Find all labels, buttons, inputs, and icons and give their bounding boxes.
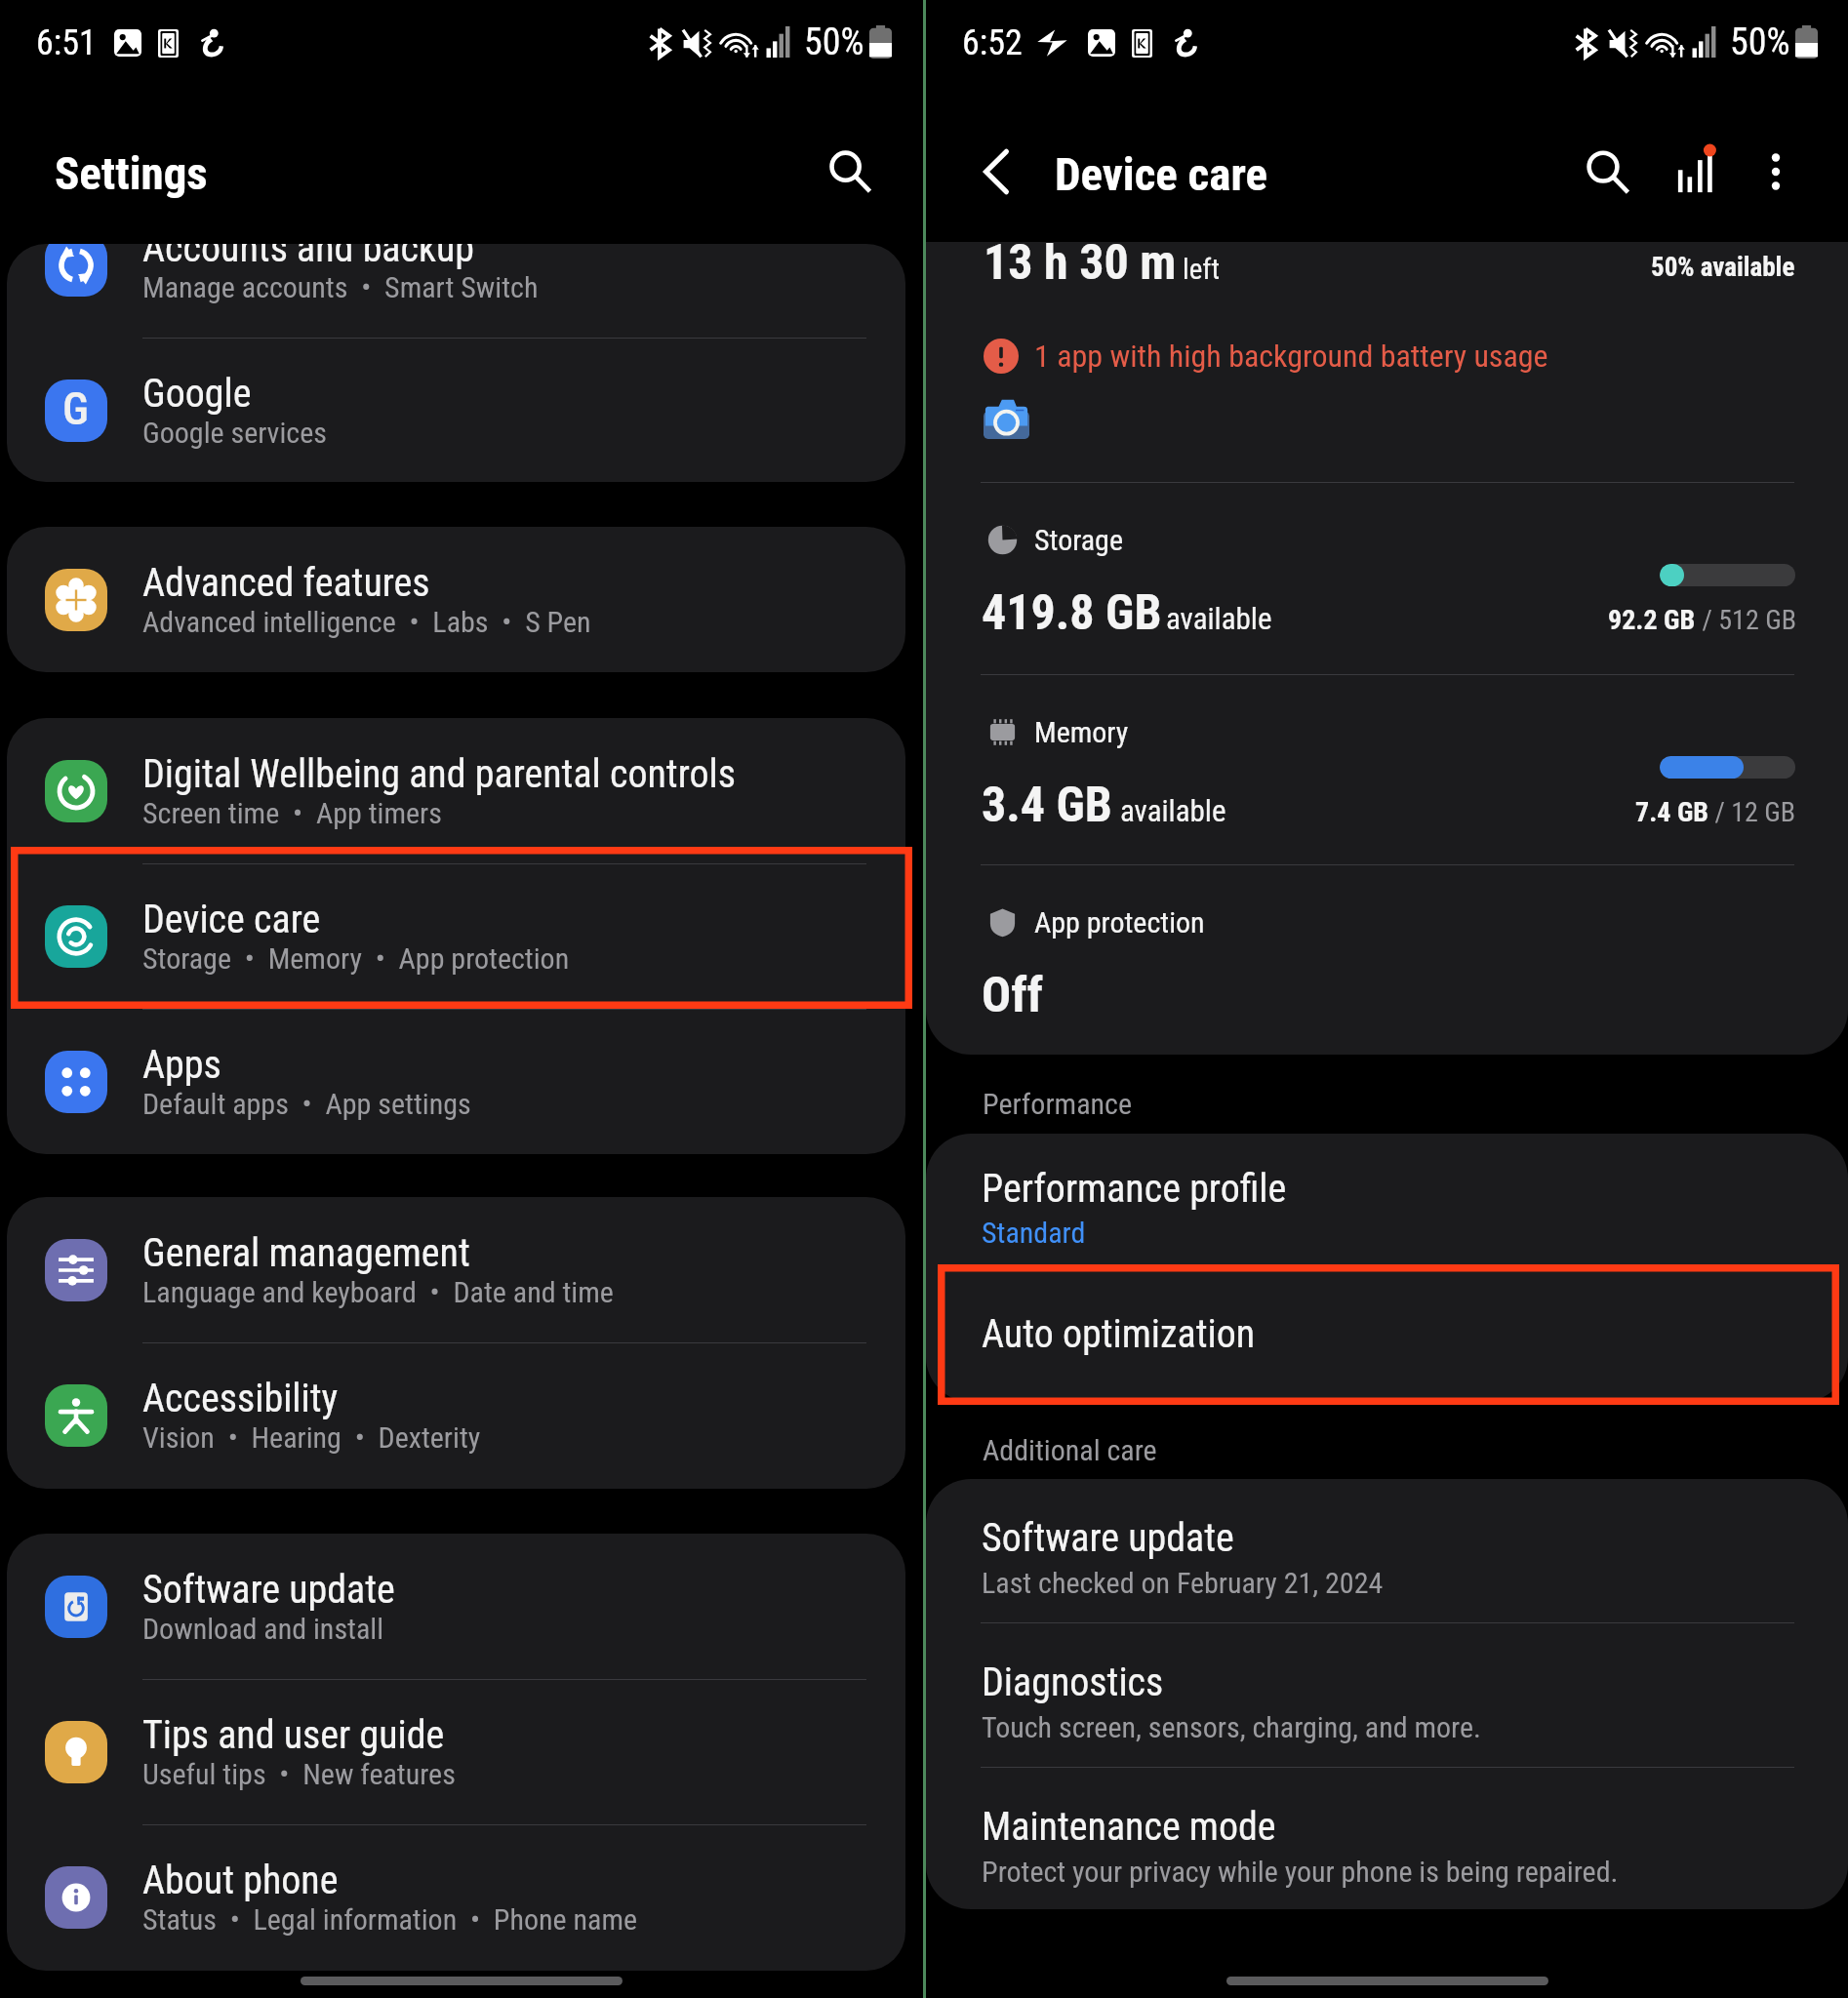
button[interactable]: Diagnostics — [926, 1623, 1848, 1767]
staticText: Device care — [1055, 147, 1267, 201]
staticText: 419.8 GB — [982, 584, 1162, 642]
button[interactable]: About phone — [7, 1824, 905, 1970]
staticText: Performance — [983, 1087, 1132, 1121]
staticText: Apps — [142, 1042, 221, 1088]
button[interactable]: Maintenance mode — [926, 1768, 1848, 1909]
staticText: available — [1166, 601, 1272, 636]
staticText: Touch screen, sensors, charging, and mor… — [982, 1710, 1481, 1744]
staticText: Vision • Hearing • Dexterity — [142, 1420, 481, 1455]
button[interactable]: G — [7, 338, 905, 482]
staticText: Language and keyboard • Date and time — [142, 1275, 614, 1309]
button[interactable]: General management — [7, 1197, 905, 1342]
button[interactable]: Accounts and backup — [7, 244, 905, 338]
staticText: Device care — [142, 897, 321, 942]
button[interactable]: Storage — [926, 483, 1848, 674]
staticText: Download and install — [142, 1612, 384, 1646]
staticText: 13 h 30 m — [984, 242, 1177, 292]
staticText: 50% available — [1651, 252, 1795, 283]
button[interactable]: Apps — [7, 1009, 905, 1154]
button[interactable]: Auto optimization — [926, 1265, 1848, 1402]
button[interactable]: More options — [1733, 129, 1819, 215]
staticText: General management — [142, 1230, 470, 1276]
staticText: Advanced intelligence • Labs • S Pen — [142, 605, 591, 639]
staticText: available — [1120, 793, 1226, 828]
staticText: Tips and user guide — [142, 1712, 445, 1758]
staticText: Settings — [55, 146, 208, 200]
button[interactable]: Software update — [7, 1534, 905, 1679]
button[interactable]: Back — [953, 129, 1039, 215]
button[interactable]: Tips and user guide — [7, 1679, 905, 1824]
staticText: App protection — [1034, 905, 1205, 939]
staticText: Software update — [142, 1567, 395, 1613]
staticText: 7.4 GB — [1635, 796, 1708, 828]
staticText: / 512 GB — [1696, 604, 1796, 636]
staticText: Status • Legal information • Phone name — [142, 1902, 638, 1937]
button[interactable]: Search — [807, 129, 893, 215]
staticText: 1 app with high background battery usage — [1034, 338, 1548, 375]
staticText: Accessibility — [142, 1376, 339, 1421]
staticText: Auto optimization — [982, 1311, 1256, 1357]
staticText: 6:52 — [962, 22, 1023, 63]
staticText: Default apps • App settings — [142, 1087, 471, 1121]
staticText: Memory — [1034, 715, 1129, 749]
button[interactable]: Advanced features — [7, 527, 905, 672]
staticText: Protect your privacy while your phone is… — [982, 1855, 1619, 1889]
staticText: Screen time • App timers — [142, 796, 442, 830]
staticText: Manage accounts • Smart Switch — [142, 270, 539, 304]
staticText: Accounts and backup — [142, 244, 475, 271]
button[interactable]: Performance profile — [926, 1134, 1848, 1264]
button[interactable]: Digital Wellbeing and parental controls — [7, 718, 905, 863]
button[interactable]: Accessibility — [7, 1342, 905, 1488]
button[interactable]: App protection — [926, 865, 1848, 1055]
staticText: Software update — [982, 1515, 1234, 1561]
staticText: G — [62, 382, 90, 435]
staticText: Advanced features — [142, 560, 430, 606]
staticText: 50% — [804, 20, 864, 64]
staticText: / 12 GB — [1708, 796, 1796, 828]
button[interactable]: Search — [1564, 129, 1650, 215]
staticText: Storage • Memory • App protection — [142, 941, 570, 976]
staticText: Storage — [1034, 523, 1123, 557]
staticText: 3.4 GB — [982, 777, 1112, 834]
staticText: Useful tips • New features — [142, 1757, 456, 1791]
staticText: Standard — [982, 1216, 1086, 1250]
staticText: 6:51 — [36, 22, 97, 63]
button[interactable]: Memory — [926, 675, 1848, 864]
staticText: Google services — [142, 416, 327, 450]
button[interactable]: Device care — [7, 863, 905, 1009]
staticText: About phone — [142, 1858, 339, 1903]
staticText: Last checked on February 21, 2024 — [982, 1566, 1384, 1600]
button[interactable]: Software update — [926, 1479, 1848, 1622]
button[interactable]: Usage statistics — [1654, 129, 1740, 215]
staticText: Digital Wellbeing and parental controls — [142, 751, 736, 797]
staticText: Performance profile — [982, 1166, 1287, 1212]
staticText: Google — [142, 371, 252, 417]
staticText: Diagnostics — [982, 1659, 1164, 1705]
staticText: 50% — [1730, 20, 1790, 64]
staticText: Maintenance mode — [982, 1804, 1276, 1850]
staticText: Off — [982, 967, 1043, 1024]
staticText: Additional care — [983, 1433, 1157, 1467]
staticText: left — [1183, 253, 1221, 286]
staticText: 92.2 GB — [1608, 604, 1696, 636]
